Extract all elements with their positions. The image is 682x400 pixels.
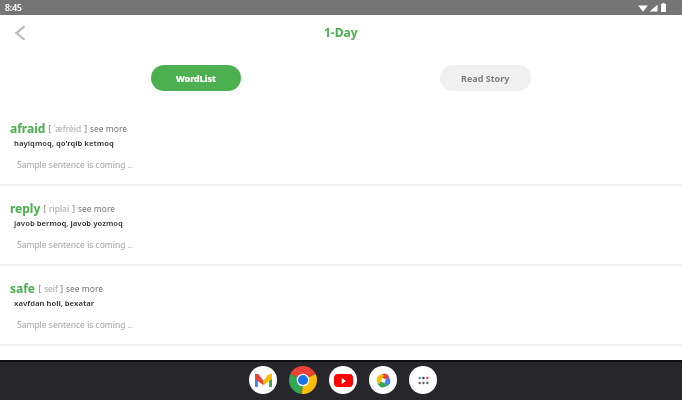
button[interactable]: WordList	[151, 65, 241, 91]
staticText: riplai	[49, 203, 70, 215]
staticText: 8:45	[5, 2, 22, 14]
staticText: javob bermoq, javob yozmoq	[14, 218, 123, 228]
staticText: Sample sentence is coming ..	[17, 319, 133, 331]
staticText: xavfdan holi, bexatar	[14, 298, 95, 308]
button[interactable]: Read Story	[440, 65, 531, 91]
button[interactable]: afraid	[0, 105, 682, 185]
staticText: ]	[70, 203, 78, 215]
button[interactable]: see more	[78, 203, 116, 215]
button[interactable]: Gmail	[249, 366, 277, 394]
button[interactable]: see more	[66, 283, 104, 295]
staticText: Sample sentence is coming ..	[17, 159, 133, 171]
staticText: ]	[58, 283, 66, 295]
staticText: hayiqmoq, qo'rqib ketmoq	[14, 138, 114, 148]
staticText: afraid	[10, 120, 46, 136]
staticText: [	[46, 123, 54, 135]
staticText: see more	[90, 123, 128, 135]
staticText: Read Story	[461, 72, 510, 84]
staticText: Sample sentence is coming ..	[17, 239, 133, 251]
staticText: ]	[82, 123, 90, 135]
staticText: ˈæfrèid	[54, 123, 82, 135]
button[interactable]: reply	[0, 185, 682, 265]
staticText: see more	[66, 283, 104, 295]
staticText: seif	[44, 283, 58, 295]
button[interactable]: All apps	[409, 366, 437, 394]
staticText: [	[36, 283, 44, 295]
staticText: reply	[10, 200, 41, 216]
button[interactable]: Back	[8, 21, 32, 45]
button[interactable]: safe	[0, 265, 682, 345]
staticText: WordList	[176, 72, 216, 84]
staticText: safe	[10, 280, 36, 296]
staticText: 1-Day	[324, 24, 358, 40]
staticText: see more	[78, 203, 116, 215]
button[interactable]: Chrome	[289, 366, 317, 394]
staticText: [	[41, 203, 49, 215]
button[interactable]: YouTube	[329, 366, 357, 394]
button[interactable]: Google Photos	[369, 366, 397, 394]
button[interactable]: see more	[90, 123, 128, 135]
